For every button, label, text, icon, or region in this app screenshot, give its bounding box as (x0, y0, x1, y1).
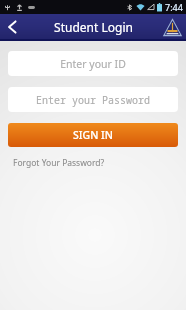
staticText: Enter your Password (36, 93, 150, 107)
staticText: Student Login (54, 19, 133, 35)
button[interactable]: Enter your Password (8, 87, 178, 112)
staticText: Enter your ID (60, 57, 126, 71)
staticText: Forgot Your Password? (13, 157, 105, 169)
button[interactable]: SIGN IN (8, 123, 178, 147)
button[interactable]: Back (0, 14, 26, 39)
staticText: 7:44 (165, 1, 183, 13)
button[interactable]: Enter your ID (8, 51, 178, 76)
button[interactable]: Forgot Your Password? (11, 155, 107, 171)
button[interactable]: Logo (161, 16, 183, 38)
staticText: SIGN IN (73, 128, 113, 142)
